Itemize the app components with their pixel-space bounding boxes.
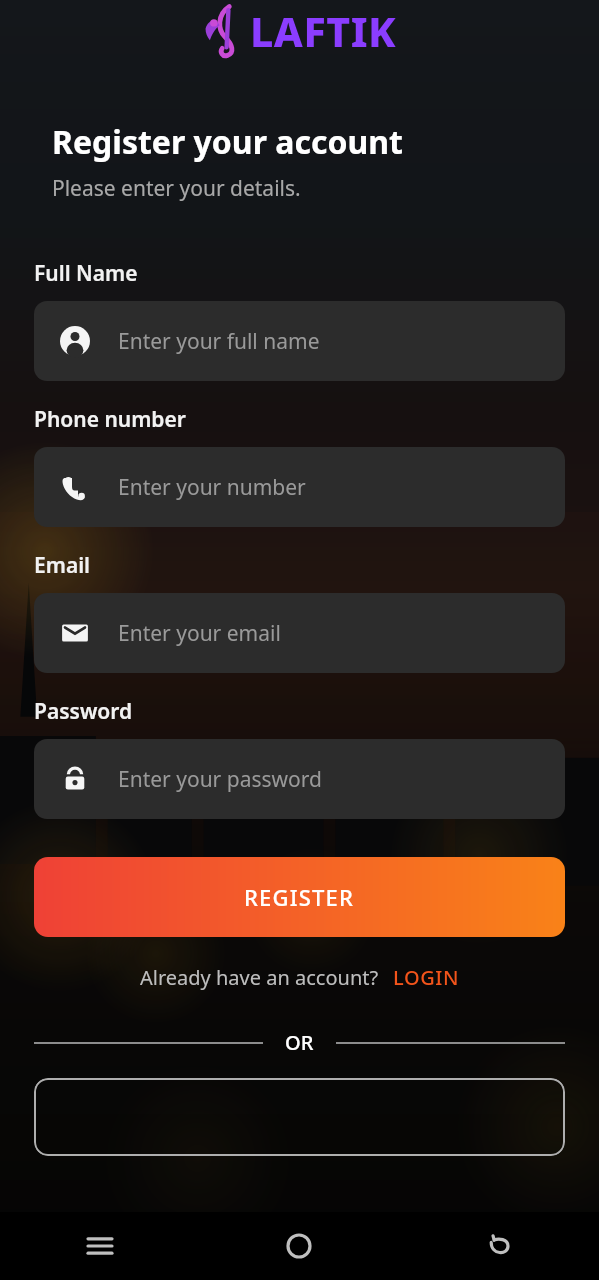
staticText: Please enter your details.: [52, 174, 301, 203]
staticText: Already have an account?: [140, 964, 379, 991]
staticText: OR: [285, 1029, 314, 1056]
button[interactable]: [34, 1078, 565, 1156]
staticText: LAFTIK: [250, 3, 397, 59]
staticText: Email: [34, 551, 91, 580]
staticText: Password: [34, 697, 133, 726]
staticText: REGISTER: [244, 882, 355, 912]
staticText: Enter your email: [118, 619, 281, 648]
staticText: Enter your number: [118, 473, 306, 502]
button[interactable]: LOGIN: [393, 964, 460, 991]
button[interactable]: Back: [399, 1212, 599, 1280]
staticText: Enter your password: [118, 765, 322, 794]
button[interactable]: Enter your full name: [34, 301, 565, 381]
button[interactable]: Enter your email: [34, 593, 565, 673]
staticText: Phone number: [34, 405, 186, 434]
button[interactable]: Enter your password: [34, 739, 565, 819]
staticText: Full Name: [34, 259, 138, 288]
button[interactable]: REGISTER: [34, 857, 565, 937]
staticText: Register your account: [52, 120, 403, 164]
button[interactable]: Home: [199, 1212, 399, 1280]
button[interactable]: Recent apps: [0, 1212, 199, 1280]
staticText: LOGIN: [393, 964, 460, 991]
staticText: Enter your full name: [118, 327, 320, 356]
button[interactable]: Enter your number: [34, 447, 565, 527]
